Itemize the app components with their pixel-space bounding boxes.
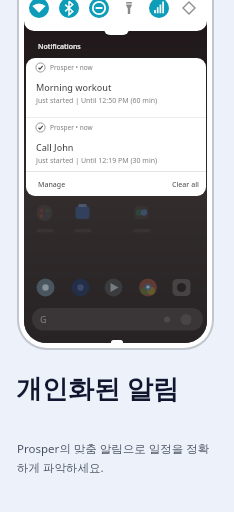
staticText: Call John [36, 141, 74, 153]
staticText: 개인화된 알림 [16, 370, 179, 406]
staticText: Manage [38, 180, 66, 190]
staticText: Prosper • now [50, 63, 93, 72]
staticText: Clear all [172, 180, 199, 190]
button[interactable] [29, 0, 49, 18]
button[interactable] [89, 0, 109, 18]
staticText: Morning workout [36, 81, 112, 93]
staticText: G [40, 313, 47, 325]
staticText: Prosper의 맞춤 알림으로 일정을 정확 하게 파악하세요. [17, 441, 210, 476]
button[interactable]: Prosper • now [26, 118, 206, 171]
staticText: Prosper • now [50, 123, 93, 132]
button[interactable]: Manage [38, 180, 66, 190]
button[interactable] [179, 0, 199, 18]
button[interactable]: Prosper • now [26, 58, 206, 117]
button[interactable] [59, 0, 79, 18]
button[interactable] [119, 0, 139, 18]
staticText: Just started | Until 12:19 PM (30 min) [36, 156, 158, 166]
button[interactable] [149, 0, 169, 18]
staticText: Notifications [38, 42, 81, 52]
staticText: Just started | Until 12:50 PM (60 min) [36, 96, 158, 106]
button[interactable]: Clear all [172, 180, 199, 190]
